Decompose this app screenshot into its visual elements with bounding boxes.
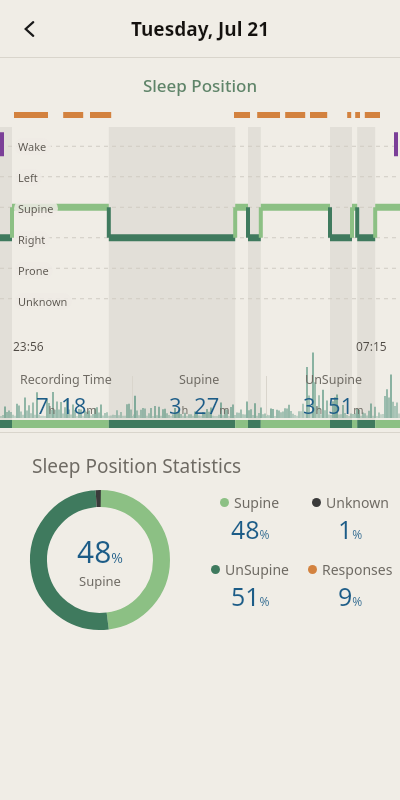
staticText: 7h 18m: [36, 390, 97, 420]
staticText: Sleep Position Statistics: [32, 453, 242, 479]
staticText: UnSupine: [305, 371, 363, 388]
staticText: Responses: [322, 560, 393, 579]
staticText: Supine: [179, 371, 220, 388]
staticText: Sleep Position: [0, 74, 400, 97]
staticText: 48%: [231, 512, 270, 546]
staticText: 9%: [338, 579, 363, 613]
staticText: 51%: [231, 579, 270, 613]
staticText: Supine: [79, 572, 121, 590]
staticText: UnSupine: [225, 560, 289, 579]
staticText: 23:56: [13, 338, 44, 354]
staticText: 48%: [77, 531, 123, 572]
button[interactable]: Supine: [133, 371, 266, 420]
staticText: Left: [18, 170, 38, 185]
button[interactable]: Unknown: [300, 493, 400, 546]
staticText: 3h 51m: [303, 390, 364, 420]
button[interactable]: Supine: [200, 493, 300, 546]
staticText: Recording Time: [20, 371, 112, 388]
staticText: Unknown: [18, 294, 68, 309]
button[interactable]: Recording Time: [0, 371, 132, 420]
staticText: Wake: [18, 139, 47, 154]
staticText: 07:15: [356, 338, 387, 354]
staticText: Supine: [234, 493, 280, 512]
staticText: Supine: [18, 201, 54, 216]
staticText: 1%: [338, 512, 363, 546]
staticText: Prone: [18, 263, 49, 278]
button[interactable]: Back: [8, 7, 52, 51]
button[interactable]: UnSupine: [200, 560, 300, 613]
staticText: Unknown: [326, 493, 389, 512]
staticText: 3h 27m: [169, 390, 230, 420]
staticText: Tuesday, Jul 21: [131, 16, 270, 42]
button[interactable]: Responses: [300, 560, 400, 613]
button[interactable]: UnSupine: [267, 371, 400, 420]
staticText: Right: [18, 232, 46, 247]
